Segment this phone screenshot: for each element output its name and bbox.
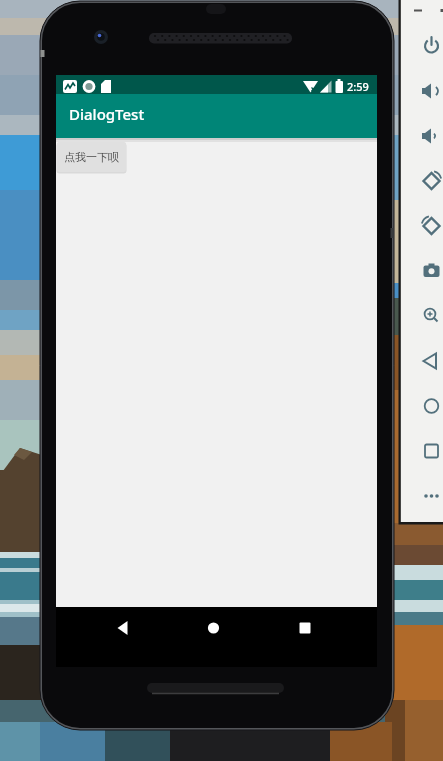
button[interactable] (419, 439, 443, 463)
button[interactable] (419, 124, 443, 148)
button[interactable] (419, 169, 443, 193)
staticText: 点我一下呗 (64, 150, 119, 164)
staticText: 2:59 (347, 79, 369, 94)
button[interactable]: 点我一下呗 (57, 142, 126, 172)
button[interactable] (419, 484, 443, 508)
button[interactable] (110, 615, 136, 641)
button[interactable] (419, 349, 443, 373)
button[interactable] (419, 34, 443, 58)
button[interactable] (419, 214, 443, 238)
button[interactable] (201, 615, 227, 641)
staticText: DialogTest (69, 104, 145, 124)
button[interactable] (419, 79, 443, 103)
button[interactable] (419, 394, 443, 418)
button[interactable] (292, 615, 318, 641)
button[interactable] (419, 304, 443, 328)
button[interactable] (419, 259, 443, 283)
